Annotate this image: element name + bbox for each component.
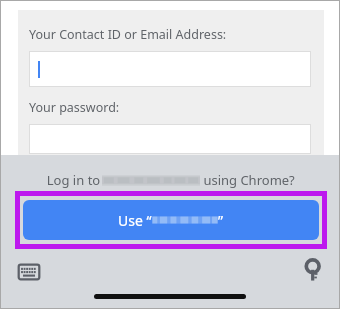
- button[interactable]: Password manager: [298, 256, 328, 284]
- staticText: Your Contact ID or Email Address:: [29, 26, 227, 43]
- button[interactable]: [29, 124, 311, 154]
- staticText: ”: [218, 211, 224, 230]
- button[interactable]: [29, 51, 311, 87]
- button[interactable]: Use “: [23, 200, 319, 240]
- staticText: Log in to: [45, 171, 102, 189]
- staticText: Use “: [118, 211, 152, 230]
- staticText: Your password:: [29, 99, 120, 116]
- button[interactable]: Switch to keyboard: [14, 260, 44, 284]
- staticText: using Chrome?: [200, 171, 295, 189]
